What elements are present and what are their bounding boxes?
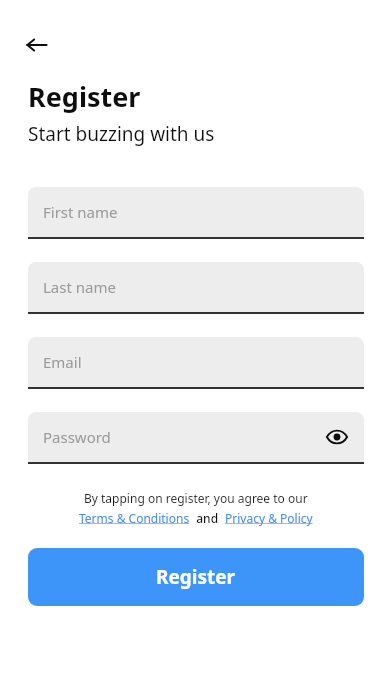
staticText: First name — [43, 202, 118, 222]
button[interactable]: Back — [16, 24, 58, 66]
button[interactable]: Password — [28, 412, 364, 464]
button[interactable]: First name — [28, 187, 364, 239]
staticText: Register — [156, 564, 236, 590]
button[interactable]: Terms & Conditions — [79, 510, 190, 526]
button[interactable]: Last name — [28, 262, 364, 314]
staticText: By tapping on register, you agree to our — [84, 490, 308, 506]
staticText: Register — [28, 78, 141, 115]
staticText: Password — [43, 427, 111, 447]
staticText: and — [190, 510, 225, 526]
button[interactable]: Register — [28, 548, 364, 606]
staticText: Email — [43, 352, 82, 372]
button[interactable]: Email — [28, 337, 364, 389]
staticText: Last name — [43, 277, 116, 297]
staticText: Terms & Conditions — [79, 510, 190, 526]
staticText: Start buzzing with us — [28, 121, 215, 147]
staticText: Privacy & Policy — [225, 510, 313, 526]
button[interactable]: Privacy & Policy — [225, 510, 313, 526]
button[interactable]: Show password — [322, 422, 352, 452]
